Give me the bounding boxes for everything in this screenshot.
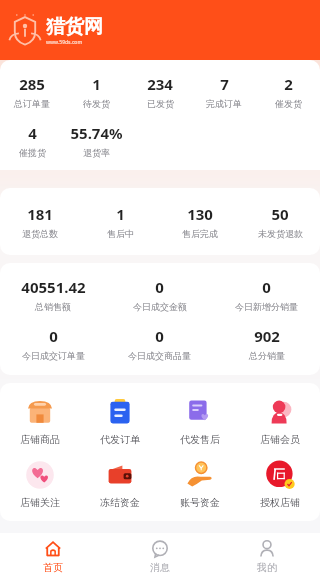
staticText: 1 [116, 204, 125, 224]
button[interactable]: 285 [0, 72, 64, 111]
staticText: 0 [155, 326, 164, 346]
button[interactable]: 7 [192, 72, 256, 111]
staticText: 代发售后 [180, 433, 220, 446]
staticText: 40551.42 [21, 277, 86, 297]
staticText: 代发订单 [100, 433, 140, 446]
staticText: 130 [187, 204, 213, 224]
staticText: www.59ds.com [46, 39, 83, 46]
staticText: 未发货退款 [258, 228, 303, 239]
button[interactable]: 0 [106, 324, 213, 363]
button[interactable]: 181 [0, 202, 80, 241]
staticText: 催揽货 [19, 147, 46, 158]
staticText: 234 [147, 74, 173, 94]
staticText: 店铺商品 [20, 433, 60, 446]
button[interactable]: 130 [160, 202, 240, 241]
button[interactable]: 首页 [0, 533, 106, 584]
button[interactable]: 猎货网 Logo [8, 13, 103, 47]
button[interactable]: 授权店铺 [240, 458, 320, 511]
button[interactable]: 55.74% [64, 121, 128, 160]
button[interactable]: 消息 [106, 533, 213, 584]
button[interactable]: 40551.42 [0, 275, 106, 314]
button[interactable]: 代发订单 [80, 395, 160, 448]
button[interactable]: 4 [0, 121, 64, 160]
button[interactable]: 2 [256, 72, 320, 111]
staticText: 55.74% [70, 123, 123, 143]
staticText: 我的 [257, 561, 277, 574]
button[interactable]: 代发售后 [160, 395, 240, 448]
button[interactable]: 店铺关注 [0, 458, 80, 511]
staticText: 退货率 [83, 147, 110, 158]
staticText: 售后完成 [182, 228, 218, 239]
staticText: 2 [284, 74, 293, 94]
staticText: 902 [254, 326, 280, 346]
staticText: 50 [271, 204, 289, 224]
staticText: 总销售额 [35, 301, 71, 312]
button[interactable]: 店铺会员 [240, 395, 320, 448]
button[interactable]: 账号资金 [160, 458, 240, 511]
staticText: 今日新增分销量 [235, 301, 298, 312]
staticText: 今日成交金额 [133, 301, 187, 312]
staticText: 4 [28, 123, 37, 143]
button[interactable]: 我的 [213, 533, 320, 584]
staticText: 181 [27, 204, 53, 224]
staticText: 今日成交商品量 [128, 350, 191, 361]
staticText: 0 [49, 326, 58, 346]
staticText: 已发货 [147, 98, 174, 109]
staticText: 催发货 [275, 98, 302, 109]
button[interactable]: 234 [128, 72, 192, 111]
staticText: 退货总数 [22, 228, 58, 239]
staticText: 首页 [43, 561, 63, 574]
button[interactable]: 1 [64, 72, 128, 111]
button[interactable]: 902 [213, 324, 320, 363]
staticText: 完成订单 [206, 98, 242, 109]
staticText: 总分销量 [249, 350, 285, 361]
button[interactable]: 0 [106, 275, 213, 314]
button[interactable]: 1 [80, 202, 160, 241]
staticText: 账号资金 [180, 496, 220, 509]
button[interactable]: 0 [213, 275, 320, 314]
staticText: 待发货 [83, 98, 110, 109]
staticText: 1 [92, 74, 101, 94]
staticText: 猎货网 [46, 15, 103, 39]
staticText: 冻结资金 [100, 496, 140, 509]
staticText: 0 [262, 277, 271, 297]
button[interactable]: 店铺商品 [0, 395, 80, 448]
staticText: 授权店铺 [260, 496, 300, 509]
staticText: 0 [155, 277, 164, 297]
staticText: 店铺关注 [20, 496, 60, 509]
button[interactable]: 0 [0, 324, 106, 363]
staticText: 285 [19, 74, 45, 94]
staticText: 7 [220, 74, 229, 94]
staticText: 店铺会员 [260, 433, 300, 446]
staticText: 今日成交订单量 [22, 350, 85, 361]
staticText: 消息 [150, 561, 170, 574]
button[interactable]: 冻结资金 [80, 458, 160, 511]
button[interactable]: 50 [240, 202, 320, 241]
staticText: 总订单量 [14, 98, 50, 109]
staticText: 售后中 [107, 228, 134, 239]
